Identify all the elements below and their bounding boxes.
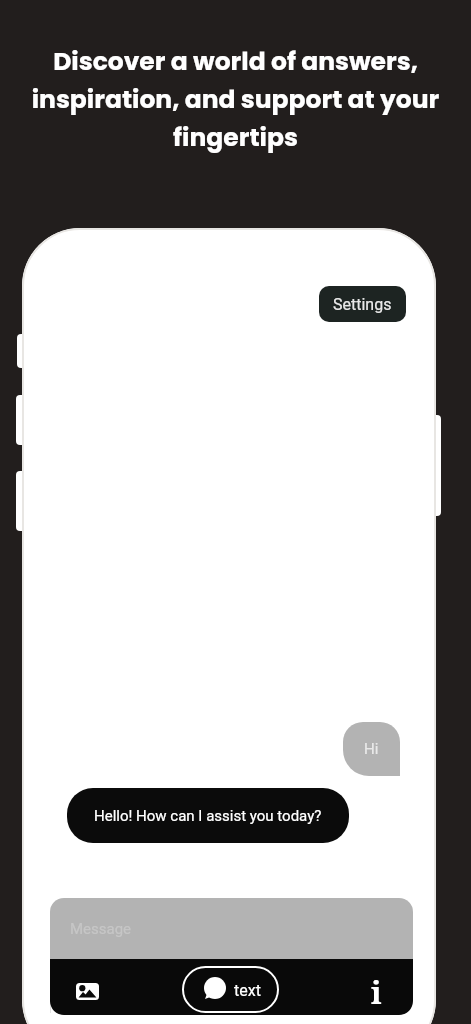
staticText: Message xyxy=(70,920,132,938)
staticText: Hello! How can I assist you today? xyxy=(94,807,322,825)
staticText: Settings xyxy=(333,295,392,314)
staticText: i xyxy=(371,972,382,1013)
staticText: Discover a world of answers, inspiration… xyxy=(0,44,471,155)
staticText: text xyxy=(234,981,261,1000)
staticText: Hi xyxy=(364,740,379,758)
